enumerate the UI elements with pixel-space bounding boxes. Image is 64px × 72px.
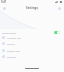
staticText: 9:41 — [1, 0, 7, 4]
staticText: Display size — [7, 49, 21, 52]
button[interactable]: More options — [56, 5, 62, 11]
button[interactable]: Notifications — [2, 29, 60, 36]
button[interactable]: Storage — [2, 53, 62, 59]
staticText: Settings — [26, 6, 38, 10]
button[interactable]: Privacy — [2, 40, 62, 46]
staticText: Storage — [7, 55, 16, 58]
button[interactable]: Account info — [2, 34, 62, 40]
staticText: Notifications — [2, 31, 17, 34]
staticText: Privacy — [7, 42, 15, 45]
button[interactable]: Back — [1, 5, 7, 11]
staticText: Account info — [7, 36, 22, 39]
button[interactable] — [0, 11, 64, 29]
button[interactable]: Display size — [2, 47, 62, 53]
